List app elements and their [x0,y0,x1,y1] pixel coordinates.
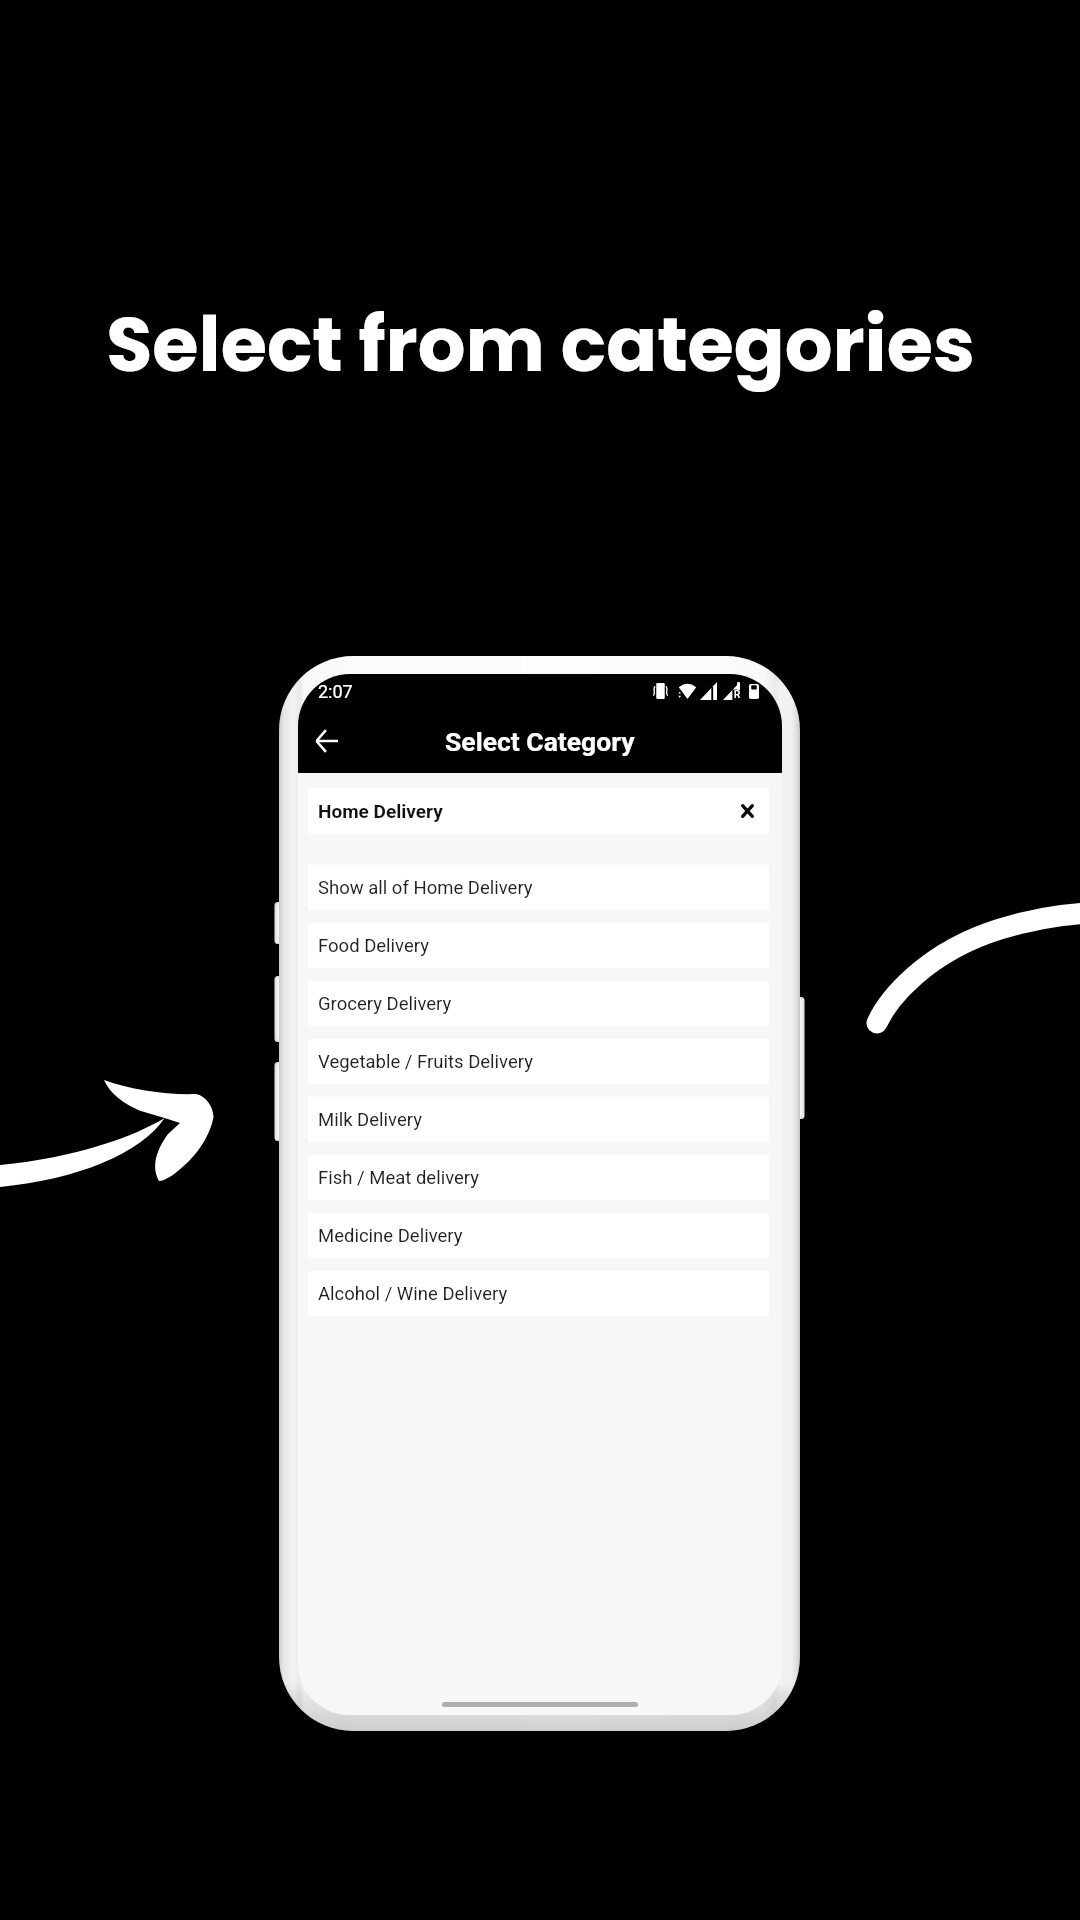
staticText: Fish / Meat delivery [318,1167,480,1189]
button[interactable]: Back [306,720,348,762]
button[interactable]: Show all of Home Delivery [308,865,769,910]
staticText: Select from categories [106,292,975,397]
staticText: Medicine Delivery [318,1225,463,1247]
button[interactable]: Milk Delivery [308,1097,769,1142]
staticText: Alcohol / Wine Delivery [318,1283,508,1305]
button[interactable]: Fish / Meat delivery [308,1155,769,1200]
staticText: Vegetable / Fruits Delivery [318,1051,533,1073]
staticText: Home Delivery [318,800,443,822]
button[interactable]: Close [732,796,762,826]
staticText: Food Delivery [318,935,429,957]
staticText: Select Category [445,726,635,757]
button[interactable]: Home Delivery [308,788,769,834]
staticText: Milk Delivery [318,1109,422,1131]
button[interactable]: Grocery Delivery [308,981,769,1026]
staticText: R [734,689,741,701]
staticText: 2:07 [318,681,353,702]
staticText: Grocery Delivery [318,993,452,1015]
button[interactable]: Alcohol / Wine Delivery [308,1271,769,1316]
button[interactable]: Food Delivery [308,923,769,968]
button[interactable]: Medicine Delivery [308,1213,769,1258]
staticText: Show all of Home Delivery [318,877,533,899]
button[interactable]: Vegetable / Fruits Delivery [308,1039,769,1084]
